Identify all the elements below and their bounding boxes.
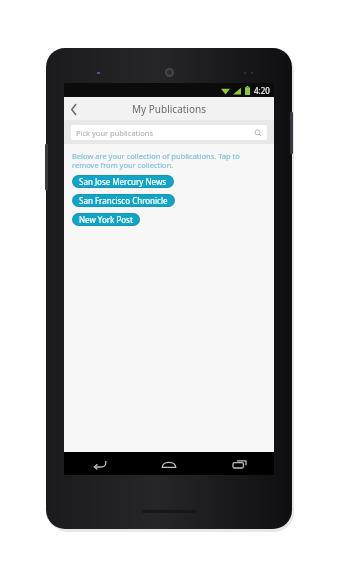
- button[interactable]: Pick your publications: [71, 125, 267, 140]
- staticText: San Francisco Chronicle: [79, 195, 168, 206]
- staticText: San Jose Mercury News: [79, 176, 167, 187]
- button[interactable]: Recent apps: [204, 452, 274, 475]
- button[interactable]: Back: [64, 99, 84, 119]
- staticText: Pick your publications: [76, 128, 254, 138]
- staticText: New York Post: [79, 214, 133, 225]
- button[interactable]: Home: [134, 452, 204, 475]
- staticText: My Publications: [132, 102, 206, 116]
- button[interactable]: San Francisco Chronicle: [73, 195, 174, 206]
- button[interactable]: San Jose Mercury News: [73, 176, 173, 187]
- button[interactable]: Back: [64, 452, 134, 475]
- button[interactable]: New York Post: [73, 214, 139, 225]
- staticText: Below are your collection of publication…: [72, 151, 260, 170]
- staticText: 4:20: [254, 85, 270, 96]
